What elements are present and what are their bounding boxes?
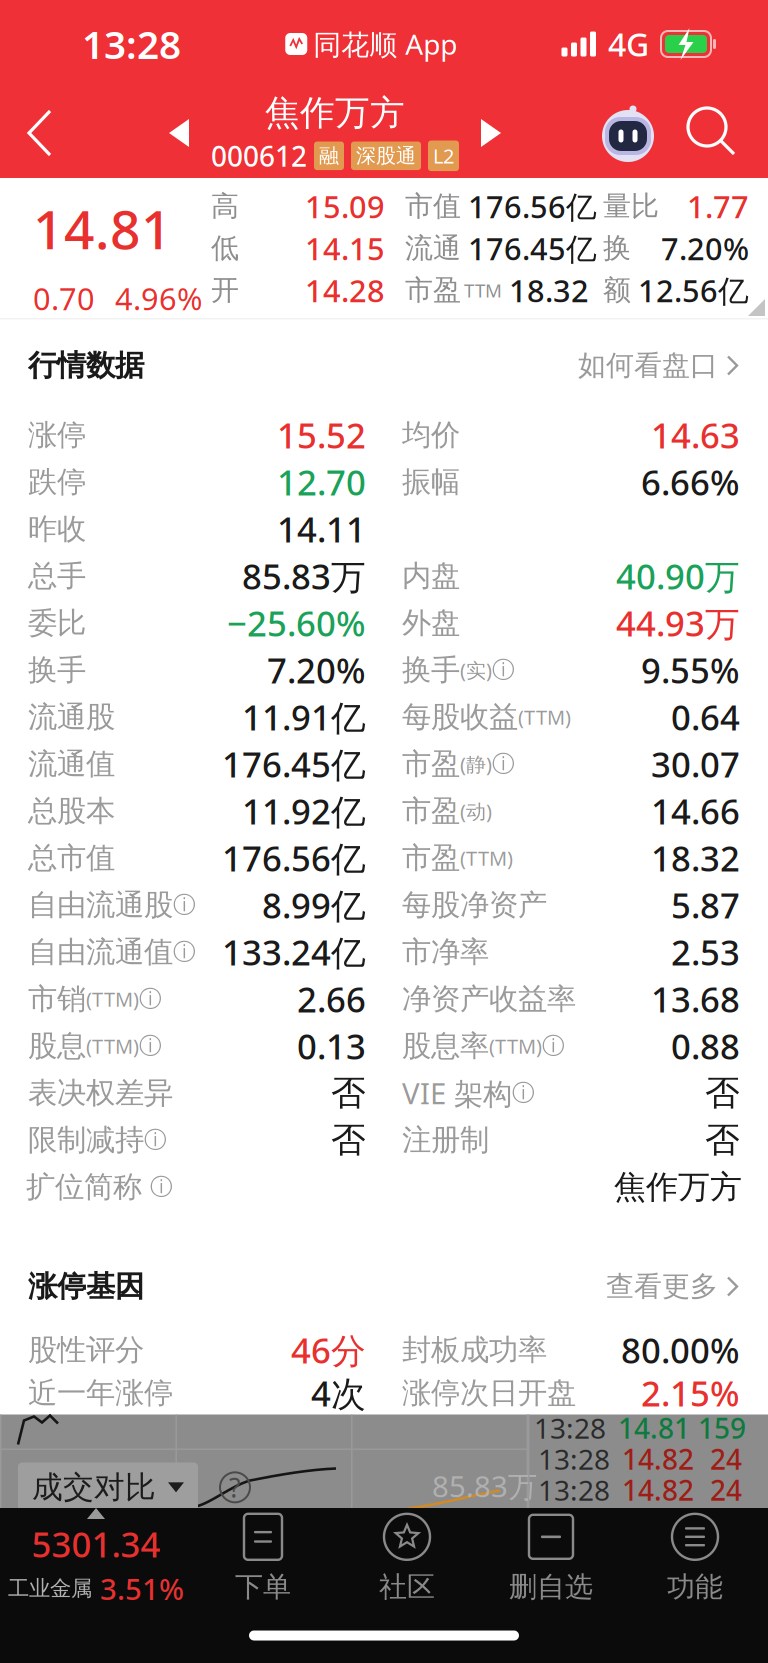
staticText: 涨停基因 (28, 1268, 144, 1304)
staticText: ⓘ (542, 1032, 565, 1060)
staticText: 4次 (311, 1370, 366, 1416)
staticText: (TTM) (489, 1033, 542, 1059)
staticText: 2.15% (641, 1370, 740, 1416)
staticText: 市销 (28, 981, 86, 1017)
staticText: 5.87 (671, 882, 740, 928)
staticText: 176.45亿 (468, 228, 597, 269)
button[interactable]: Previous stock (159, 88, 199, 178)
staticText: ⓘ (173, 938, 196, 966)
button[interactable]: 5301.34 (1, 1508, 191, 1608)
button[interactable]: 下单 (191, 1508, 335, 1608)
staticText: 0.13 (297, 1023, 366, 1069)
staticText: 股性评分 (28, 1332, 144, 1368)
staticText: 涨停 (28, 417, 86, 453)
staticText: 13:28 (534, 1409, 606, 1447)
staticText: 查看更多 (606, 1269, 718, 1304)
staticText: 限制减持 (28, 1122, 144, 1158)
staticText: 2.53 (671, 929, 740, 975)
staticText: 85.83万 (242, 553, 366, 599)
staticText: 176.45亿 (222, 741, 366, 787)
staticText: 14.11 (277, 506, 366, 552)
staticText: 市值 (405, 189, 461, 223)
staticText: 12.56亿 (638, 270, 749, 311)
button[interactable]: AI assistant (586, 88, 670, 178)
staticText: 13:28 (538, 1471, 610, 1509)
staticText: 均价 (402, 417, 460, 453)
staticText: 总股本 (28, 793, 115, 829)
staticText: 市净率 (402, 934, 489, 970)
staticText: ? (229, 1470, 241, 1505)
staticText: (实) (460, 657, 492, 683)
staticText: 13:28 (538, 1440, 610, 1478)
staticText: 12.70 (277, 459, 366, 505)
staticText: TTM (464, 278, 502, 303)
staticText: 14.63 (651, 412, 740, 458)
staticText: 24 (710, 1440, 742, 1478)
staticText: 4.96% (115, 278, 202, 319)
staticText: 14.28 (305, 270, 385, 311)
staticText: 14.82 (622, 1471, 694, 1509)
button[interactable]: Next stock (471, 88, 511, 178)
staticText: (TTM) (460, 845, 513, 871)
staticText: (动) (460, 798, 492, 824)
staticText: 封板成功率 (402, 1332, 547, 1368)
staticText: 1.77 (687, 186, 749, 227)
staticText: 市盈 (402, 746, 460, 782)
staticText: 行情数据 (28, 347, 144, 383)
button[interactable]: 删自选 (479, 1508, 623, 1608)
staticText: 总市值 (28, 840, 115, 876)
staticText: 否 (331, 1119, 366, 1161)
staticText: 3.51% (100, 1569, 184, 1608)
staticText: ⓘ (150, 1173, 173, 1201)
staticText: 扩位简称 (26, 1169, 142, 1205)
staticText: 低 (211, 231, 239, 265)
staticText: 13.68 (651, 976, 740, 1022)
staticText: (TTM) (86, 986, 139, 1012)
staticText: 7.20% (267, 647, 366, 693)
staticText: −25.60% (227, 600, 366, 646)
staticText: 否 (705, 1072, 740, 1114)
button[interactable]: 如何看盘口 (578, 348, 740, 383)
staticText: 近一年涨停 (28, 1375, 173, 1411)
button[interactable]: Search (670, 88, 768, 178)
staticText: 内盘 (402, 558, 460, 594)
button[interactable]: Help (220, 1472, 250, 1502)
staticText: 0.70 (33, 278, 95, 319)
staticText: 净资产收益率 (402, 981, 576, 1017)
button[interactable]: 成交对比 (18, 1462, 198, 1512)
staticText: 18.32 (509, 270, 589, 311)
staticText: 量比 (603, 189, 659, 223)
staticText: 社区 (379, 1570, 435, 1604)
staticText: 176.56亿 (468, 186, 597, 227)
staticText: 涨停次日开盘 (402, 1375, 576, 1411)
staticText: 176.56亿 (222, 835, 366, 881)
staticText: 46分 (291, 1327, 366, 1373)
staticText: L2 (433, 142, 454, 169)
staticText: 换手 (28, 652, 86, 688)
staticText: 否 (705, 1119, 740, 1161)
staticText: 换 (603, 231, 631, 265)
staticText: 8.99亿 (262, 882, 366, 928)
staticText: 委比 (28, 605, 86, 641)
staticText: 44.93万 (616, 600, 740, 646)
staticText: 融 (319, 143, 339, 168)
staticText: 14.15 (305, 228, 385, 269)
staticText: 工业金属 (8, 1575, 92, 1602)
staticText: 焦作万方 (265, 92, 405, 134)
staticText: VIE 架构 (402, 1073, 512, 1112)
button[interactable]: 社区 (335, 1508, 479, 1608)
staticText: ⓘ (144, 1126, 167, 1154)
staticText: 总手 (28, 558, 86, 594)
button[interactable]: 查看更多 (606, 1269, 740, 1304)
button[interactable]: 功能 (623, 1508, 767, 1608)
staticText: 6.66% (641, 459, 740, 505)
staticText: 市盈 (402, 793, 460, 829)
staticText: 18.32 (651, 835, 740, 881)
staticText: ⓘ (512, 1079, 535, 1107)
staticText: 4G (608, 23, 649, 65)
staticText: 159 (698, 1409, 746, 1447)
staticText: 11.91亿 (242, 694, 366, 740)
staticText: 表决权差异 (28, 1075, 173, 1111)
button[interactable]: Back (0, 88, 84, 178)
staticText: 30.07 (651, 741, 740, 787)
